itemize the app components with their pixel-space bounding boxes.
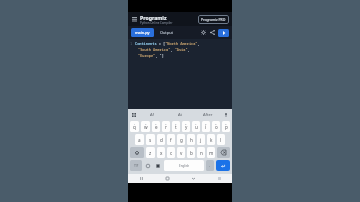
staticText: n <box>200 150 203 156</box>
staticText: At <box>178 112 182 117</box>
button[interactable]: Shift <box>130 147 144 158</box>
button[interactable]: English <box>164 160 204 171</box>
button[interactable]: n <box>197 147 205 158</box>
staticText: a <box>138 137 141 143</box>
staticText: English <box>179 164 190 168</box>
button[interactable]: f <box>167 134 175 145</box>
button[interactable]: g <box>177 134 185 145</box>
staticText: x <box>160 150 163 156</box>
staticText: g <box>180 137 183 143</box>
staticText: 1 <box>130 41 133 46</box>
button[interactable]: d <box>157 134 165 145</box>
button[interactable]: Home <box>154 174 180 183</box>
staticText: "South America", "Asia", <box>138 47 190 52</box>
button[interactable]: Settings <box>153 159 163 172</box>
button[interactable]: . <box>206 160 214 171</box>
staticText: u <box>195 124 198 130</box>
button[interactable]: 3 <box>152 121 160 132</box>
button[interactable]: At <box>166 109 194 120</box>
button[interactable]: Enter <box>216 160 230 171</box>
button[interactable]: Output <box>156 28 178 37</box>
button[interactable]: Af <box>138 109 166 120</box>
staticText: Programiz <box>140 14 167 21</box>
staticText: c <box>170 150 173 156</box>
staticText: v <box>180 150 183 156</box>
button[interactable]: After <box>194 109 222 120</box>
button[interactable]: m <box>207 147 215 158</box>
staticText: e <box>155 124 158 130</box>
button[interactable]: z <box>146 147 155 158</box>
button[interactable]: l <box>217 134 225 145</box>
button[interactable]: 0 <box>222 121 230 132</box>
staticText: b <box>190 150 193 156</box>
button[interactable]: Programiz PRO <box>198 15 229 24</box>
staticText: "Europe", "] <box>138 53 167 58</box>
staticText: 8 <box>205 122 207 125</box>
button[interactable]: Recents <box>128 174 154 183</box>
button[interactable]: Hide keyboard <box>180 174 206 183</box>
staticText: !1? <box>134 163 139 168</box>
staticText: s <box>149 137 152 143</box>
staticText: Output <box>160 30 174 35</box>
staticText: 2 <box>145 122 147 125</box>
button[interactable]: 6 <box>182 121 190 132</box>
button[interactable]: 8 <box>202 121 210 132</box>
staticText: p <box>225 124 228 130</box>
staticText: main.py <box>135 30 150 35</box>
staticText: k <box>210 137 213 143</box>
staticText: z <box>149 150 152 156</box>
staticText: j <box>200 137 202 143</box>
button[interactable]: 9 <box>212 121 220 132</box>
button[interactable]: v <box>177 147 185 158</box>
staticText: Programiz PRO <box>201 17 226 22</box>
staticText: 9 <box>215 122 217 125</box>
staticText: 5 <box>175 122 177 125</box>
staticText: After <box>203 112 213 117</box>
button[interactable]: !1? <box>130 160 142 171</box>
button[interactable]: k <box>207 134 215 145</box>
button[interactable]: Backspace <box>217 147 230 158</box>
button[interactable]: 1 <box>130 121 139 132</box>
staticText: o <box>215 124 218 130</box>
button[interactable]: Theme <box>199 28 208 37</box>
staticText: y <box>185 124 188 130</box>
staticText: l <box>220 137 222 143</box>
staticText: r <box>165 124 167 130</box>
button[interactable]: x <box>157 147 165 158</box>
button[interactable]: 7 <box>192 121 200 132</box>
staticText: Continents = ["North America", <box>135 41 200 46</box>
staticText: h <box>190 137 193 143</box>
button[interactable]: Share <box>208 28 217 37</box>
button[interactable]: Clipboard <box>130 111 138 119</box>
button[interactable]: Programiz <box>140 14 173 25</box>
staticText: m <box>209 150 214 156</box>
button[interactable]: Menu <box>131 16 138 23</box>
staticText: f <box>170 137 172 143</box>
button[interactable]: Voice input <box>222 111 230 119</box>
staticText: . <box>209 163 211 169</box>
button[interactable]: 2 <box>141 121 150 132</box>
staticText: 7 <box>195 122 197 125</box>
button[interactable]: Emoji <box>143 159 153 172</box>
staticText: Python Online Compiler <box>140 21 173 25</box>
button[interactable]: b <box>187 147 195 158</box>
staticText: t <box>175 124 177 130</box>
staticText: 1 <box>134 122 136 125</box>
staticText: 4 <box>165 122 167 125</box>
button[interactable]: c <box>167 147 175 158</box>
staticText: 0 <box>225 122 227 125</box>
staticText: w <box>144 124 148 130</box>
button[interactable]: main.py <box>131 28 154 37</box>
button[interactable]: h <box>187 134 195 145</box>
button[interactable]: a <box>135 134 144 145</box>
staticText: 3 <box>155 122 157 125</box>
button[interactable]: Run <box>218 29 229 37</box>
button[interactable]: j <box>197 134 205 145</box>
button[interactable]: 4 <box>162 121 170 132</box>
button[interactable]: s <box>146 134 155 145</box>
staticText: 6 <box>185 122 187 125</box>
staticText: d <box>160 137 163 143</box>
staticText: q <box>133 124 136 130</box>
staticText: i <box>205 124 207 130</box>
button[interactable]: 5 <box>172 121 180 132</box>
